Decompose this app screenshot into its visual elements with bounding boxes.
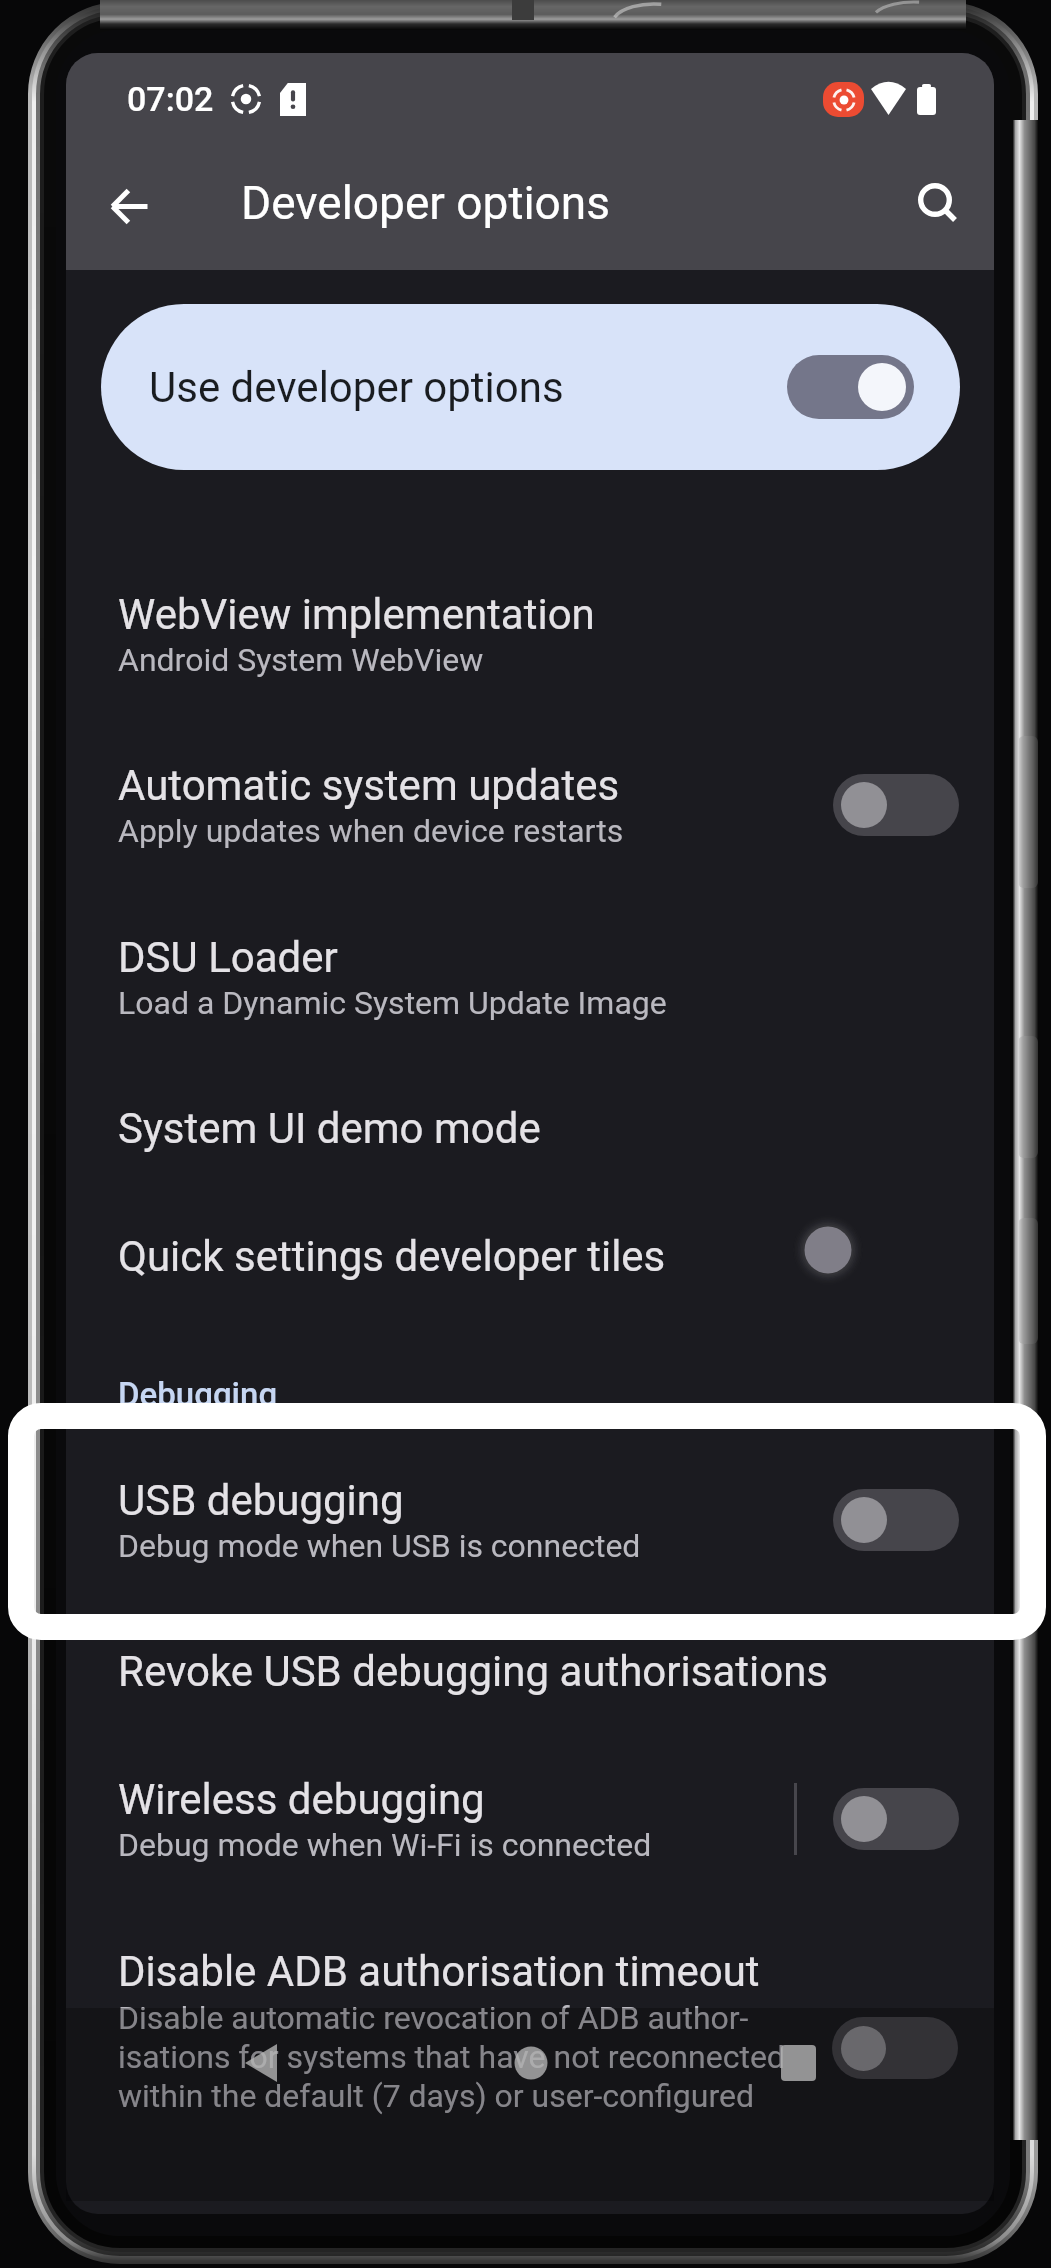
button[interactable]: Automatic system updates (833, 774, 959, 836)
staticText: Disable automatic revocation of ADB auth… (118, 1999, 749, 2037)
button[interactable]: USB debugging (833, 1489, 959, 1551)
button[interactable]: Revoke USB debugging authorisations (118, 1647, 829, 1696)
button[interactable]: Wireless debugging (118, 1775, 485, 1824)
button[interactable]: Wireless debugging (833, 1788, 959, 1850)
staticText: Debugging (118, 1375, 278, 1414)
button[interactable]: System UI demo mode (118, 1104, 541, 1153)
staticText: Wireless debugging (118, 1775, 485, 1824)
staticText: Revoke USB debugging authorisations (118, 1647, 829, 1696)
button[interactable]: Back (86, 162, 174, 250)
staticText: DSU Loader (118, 933, 338, 982)
button[interactable]: Search (891, 156, 979, 244)
staticText: 07:02 (127, 79, 214, 119)
button[interactable]: Use developer options (101, 304, 960, 470)
staticText: Quick settings developer tiles (118, 1232, 666, 1281)
button[interactable]: Disable ADB authorisation timeout (832, 2017, 958, 2079)
staticText: isations for systems that have not recon… (118, 2038, 785, 2076)
button[interactable]: WebView implementation (118, 590, 595, 639)
staticText: Apply updates when device restarts (118, 812, 624, 850)
button[interactable]: Quick settings developer tiles (118, 1232, 666, 1281)
staticText: USB debugging (118, 1476, 404, 1525)
staticText: Use developer options (149, 363, 564, 412)
staticText: Disable ADB authorisation timeout (118, 1947, 760, 1996)
staticText: Developer options (241, 176, 610, 230)
button[interactable]: Automatic system updates (118, 761, 620, 810)
button[interactable]: USB debugging (118, 1476, 404, 1525)
staticText: within the default (7 days) or user-conf… (118, 2077, 754, 2115)
staticText: Android System WebView (118, 641, 484, 679)
staticText: WebView implementation (118, 590, 595, 639)
button[interactable]: DSU Loader (118, 933, 338, 982)
staticText: Load a Dynamic System Update Image (118, 984, 667, 1022)
staticText: Debug mode when USB is connected (118, 1527, 641, 1565)
staticText: System UI demo mode (118, 1104, 541, 1153)
button[interactable]: Quick settings developer tiles (794, 1216, 862, 1284)
button[interactable]: Use developer options (787, 355, 914, 419)
staticText: Automatic system updates (118, 761, 620, 810)
button[interactable]: Disable ADB authorisation timeout (118, 1947, 760, 1996)
staticText: Debug mode when Wi-Fi is connected (118, 1826, 652, 1864)
